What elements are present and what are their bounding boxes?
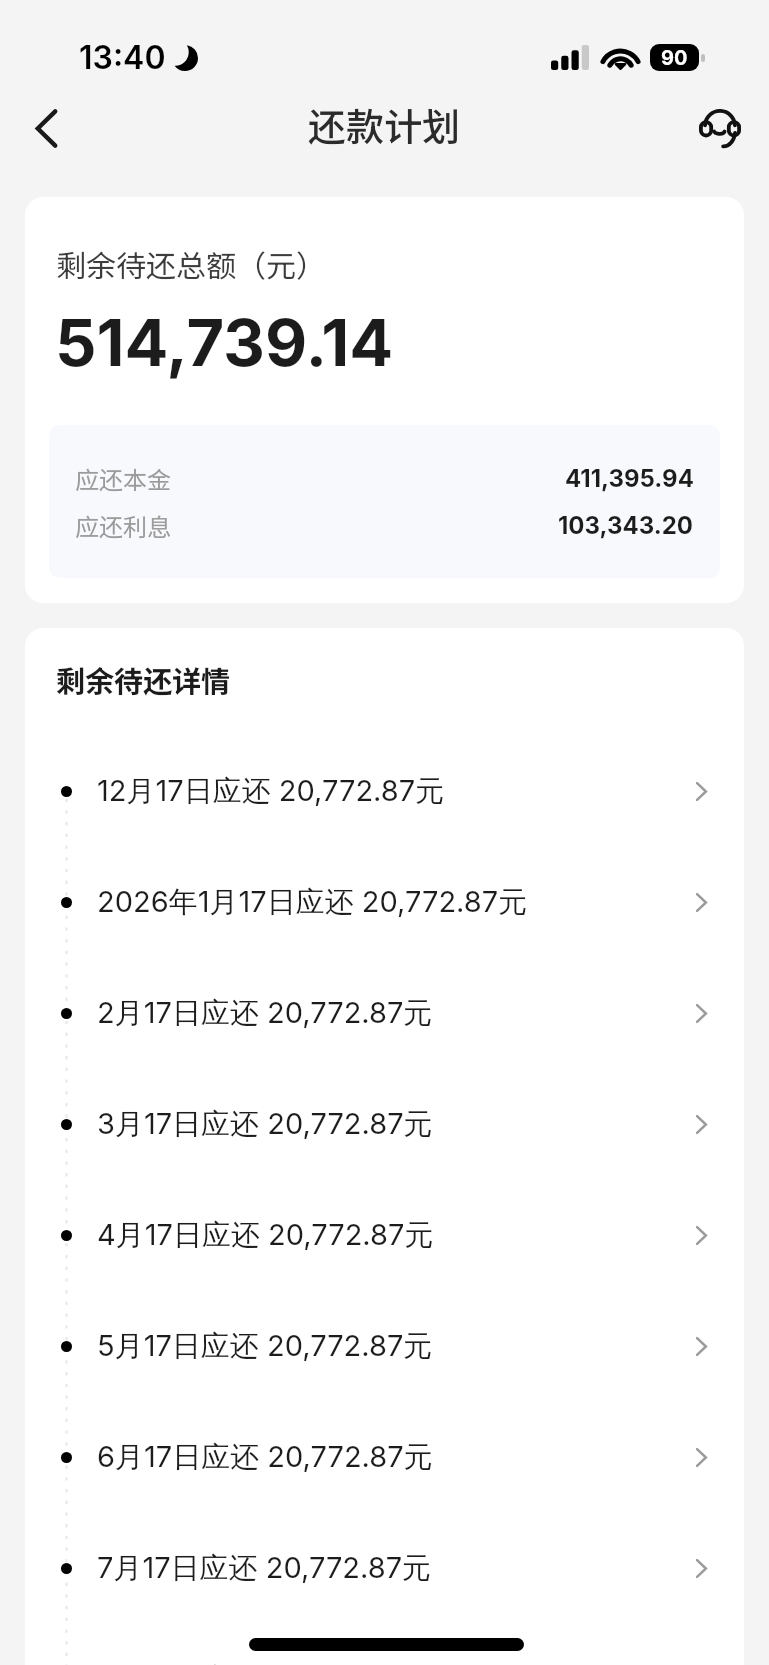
staticText: 剩余待还详情 [56,658,231,700]
staticText: 90 [661,46,688,70]
staticText: 6月17日应还 20,772.87元 [97,1439,695,1476]
button[interactable]: Customer service [691,99,749,157]
button[interactable]: 5月17日应还 20,772.87元 [25,1287,744,1398]
staticText: 应还利息 [75,508,171,543]
staticText: 3月17日应还 20,772.87元 [97,1106,695,1143]
staticText: 2026年1月17日应还 20,772.87元 [97,884,695,921]
button[interactable]: 2月17日应还 20,772.87元 [25,954,744,1065]
staticText: 12月17日应还 20,772.87元 [97,773,695,810]
staticText: 还款计划 [308,97,461,152]
staticText: 7月17日应还 20,772.87元 [97,1550,695,1587]
button[interactable]: 3月17日应还 20,772.87元 [25,1065,744,1176]
button[interactable]: Back [17,99,75,157]
staticText: 2月17日应还 20,772.87元 [97,995,695,1032]
button[interactable]: 12月17日应还 20,772.87元 [25,732,744,843]
button[interactable]: 7月17日应还 20,772.87元 [25,1509,744,1620]
staticText: 剩余待还总额（元） [56,242,326,285]
staticText: 13:40 [79,38,166,77]
staticText: 4月17日应还 20,772.87元 [97,1217,695,1254]
staticText: 5月17日应还 20,772.87元 [97,1328,695,1365]
staticText: 514,739.14 [55,303,394,382]
staticText: 411,395.94 [565,464,694,493]
button[interactable]: 2026年1月17日应还 20,772.87元 [25,843,744,954]
staticText: 103,343.20 [558,511,694,540]
staticText: 应还本金 [75,461,171,496]
button[interactable]: 6月17日应还 20,772.87元 [25,1398,744,1509]
button[interactable]: 4月17日应还 20,772.87元 [25,1176,744,1287]
button[interactable]: 8月17日应还 20,772.87元 [25,1620,744,1665]
